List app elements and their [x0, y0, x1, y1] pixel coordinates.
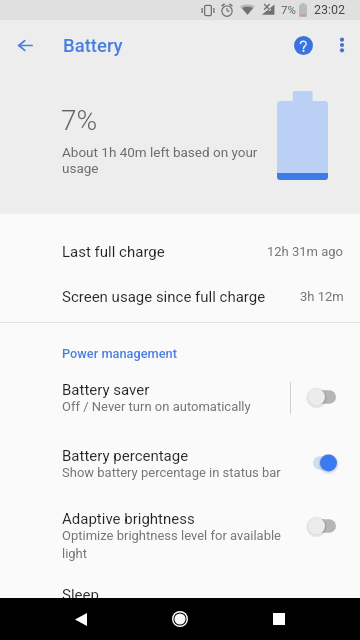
- staticText: Adaptive brightness: [62, 510, 195, 528]
- button[interactable]: Home: [154, 598, 206, 640]
- staticText: Optimize brightness level for available …: [62, 528, 288, 561]
- button[interactable]: Help: [283, 25, 323, 65]
- button[interactable]: Screen usage since full charge: [0, 274, 360, 319]
- staticText: 12h 31m ago: [267, 244, 344, 259]
- staticText: 7%: [61, 104, 98, 137]
- button[interactable]: Battery percentage: [298, 441, 348, 485]
- staticText: Power management: [62, 346, 177, 361]
- button[interactable]: More options: [322, 25, 360, 65]
- button[interactable]: Navigate up: [4, 24, 46, 66]
- staticText: Off / Never turn on automatically: [62, 399, 251, 414]
- button[interactable]: Recent apps: [253, 598, 305, 640]
- button[interactable]: Adaptive brightness: [298, 504, 348, 548]
- staticText: Last full charge: [62, 243, 165, 261]
- staticText: Screen usage since full charge: [62, 288, 266, 306]
- button[interactable]: [0, 447, 360, 501]
- staticText: About 1h 40m left based on your usage: [62, 144, 262, 177]
- button[interactable]: Battery saver: [298, 375, 348, 419]
- staticText: 7%: [281, 3, 296, 16]
- staticText: Battery percentage: [62, 447, 189, 465]
- staticText: Battery saver: [62, 381, 150, 399]
- button[interactable]: Last full charge: [0, 229, 360, 274]
- staticText: 23:02: [314, 2, 346, 17]
- staticText: 3h 12m: [300, 289, 344, 304]
- button[interactable]: [0, 381, 360, 435]
- staticText: Battery: [63, 35, 123, 57]
- staticText: Sleep: [62, 586, 99, 604]
- button[interactable]: Back: [55, 598, 107, 640]
- button[interactable]: [0, 510, 360, 564]
- staticText: Show battery percentage in status bar: [62, 465, 281, 480]
